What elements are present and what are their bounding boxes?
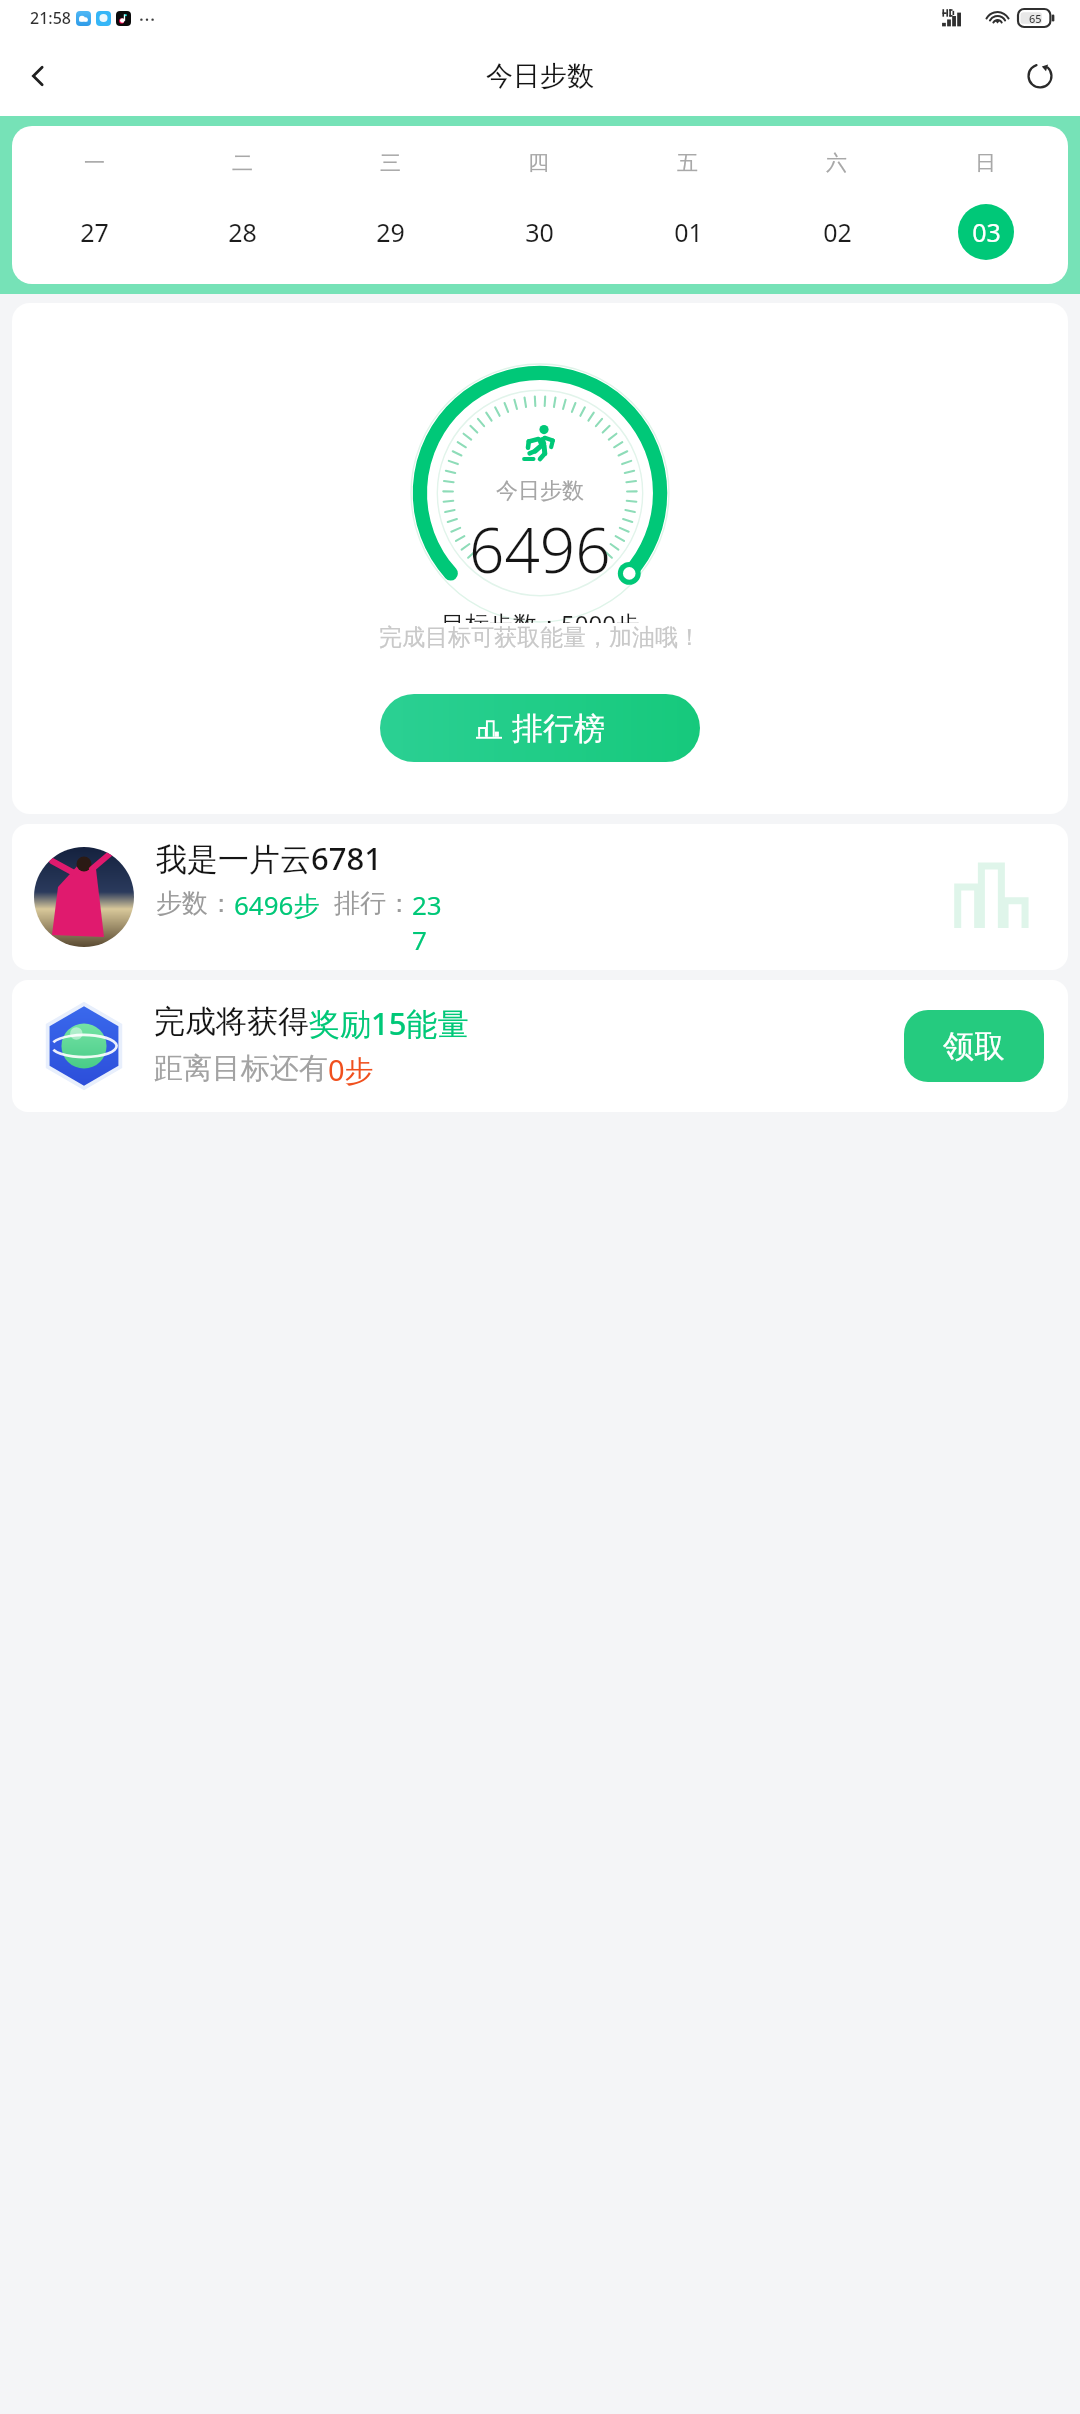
button[interactable]: 28 [214,204,270,260]
staticText: 6496 [469,507,611,591]
staticText: 237 [412,887,446,957]
staticText: 27 [80,215,109,249]
staticText: 0步 [328,1050,374,1090]
staticText: 今日步数 [486,59,594,93]
staticText: 02 [823,215,852,249]
staticText: 完成目标可获取能量，加油哦！ [379,623,701,652]
staticText: 排行： [334,887,412,920]
staticText: 一 [84,150,105,176]
staticText: 28 [228,215,257,249]
staticText: 距离目标还有 [154,1050,328,1087]
button[interactable]: 27 [66,204,122,260]
button[interactable]: 29 [362,204,418,260]
staticText: 四 [528,150,549,176]
staticText: 我是一片云6781 [156,837,382,879]
staticText: 今日步数 [496,477,584,505]
staticText: 30 [525,215,554,249]
button[interactable]: Back [10,48,66,104]
staticText: 领取 [943,1027,1005,1066]
button[interactable]: 30 [511,204,567,260]
staticText: 三 [380,150,401,176]
button[interactable]: 我是一片云6781 [12,824,1068,970]
staticText: 目标步数：5000步 [441,607,640,623]
staticText: 奖励15能量 [309,1002,469,1044]
staticText: 65 [1029,11,1042,26]
staticText: 五 [677,150,698,176]
staticText: 29 [376,215,405,249]
staticText: 六 [826,150,847,176]
staticText: 日 [975,150,996,176]
button[interactable]: 01 [660,204,716,260]
staticText: 二 [232,150,253,176]
button[interactable]: 03 [958,204,1014,260]
staticText: 6496步 [234,887,320,923]
staticText: 完成将获得 [154,1002,309,1041]
staticText: 03 [972,215,1001,249]
button[interactable]: 排行榜 [380,694,700,762]
button[interactable]: 02 [809,204,865,260]
staticText: 步数： [156,887,234,920]
button[interactable]: 领取 [904,1010,1044,1082]
staticText: 排行榜 [512,709,605,748]
button[interactable]: Refresh [1012,48,1068,104]
staticText: 01 [674,215,703,249]
staticText: 21:58 [30,7,71,29]
